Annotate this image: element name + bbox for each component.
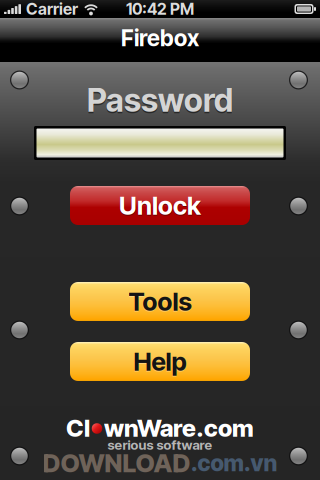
- staticText: o: [90, 413, 104, 442]
- staticText: 10:42 PM: [126, 0, 194, 19]
- staticText: Unlock: [119, 190, 201, 221]
- button[interactable]: Unlock: [70, 186, 250, 225]
- staticText: Help: [133, 346, 186, 377]
- button[interactable]: Help: [70, 342, 250, 381]
- staticText: DOWNLOAD: [42, 448, 190, 478]
- staticText: Unlock: [119, 191, 201, 222]
- staticText: Password: [87, 82, 233, 121]
- staticText: .com.vn: [190, 449, 277, 477]
- staticText: Firebox: [121, 24, 199, 52]
- staticText: Cl: [66, 413, 90, 442]
- staticText: serious software: [107, 437, 212, 453]
- staticText: Password: [87, 81, 233, 119]
- button[interactable]: Tools: [70, 282, 250, 321]
- staticText: Help: [133, 347, 186, 378]
- staticText: Carrier: [26, 0, 78, 19]
- staticText: Tools: [128, 286, 191, 317]
- staticText: Tools: [128, 287, 191, 318]
- staticText: wnWare.com: [104, 413, 254, 442]
